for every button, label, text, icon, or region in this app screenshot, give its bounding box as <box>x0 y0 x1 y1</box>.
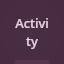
staticText: Activity <box>14 14 50 50</box>
